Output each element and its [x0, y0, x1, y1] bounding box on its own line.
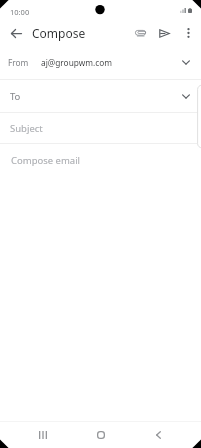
staticText: aj@groupwm.com	[41, 57, 112, 68]
button[interactable]: Compose email	[0, 144, 201, 176]
button[interactable]: Send	[152, 21, 176, 45]
button[interactable]: Home	[86, 421, 116, 448]
button[interactable]: More options	[176, 21, 200, 45]
button[interactable]: To	[0, 80, 201, 112]
button[interactable]: Back	[143, 421, 173, 448]
staticText: Compose email	[11, 154, 81, 167]
staticText: 10:00	[10, 7, 30, 17]
staticText: Subject	[10, 122, 43, 135]
button[interactable]: From	[0, 46, 201, 79]
button[interactable]: Recent apps	[28, 421, 58, 448]
staticText: From	[8, 57, 29, 68]
button[interactable]: Subject	[0, 113, 201, 143]
staticText: Compose	[32, 25, 86, 41]
staticText: To	[10, 90, 21, 103]
button[interactable]: Attach file	[128, 21, 152, 45]
button[interactable]: Back	[3, 20, 29, 46]
